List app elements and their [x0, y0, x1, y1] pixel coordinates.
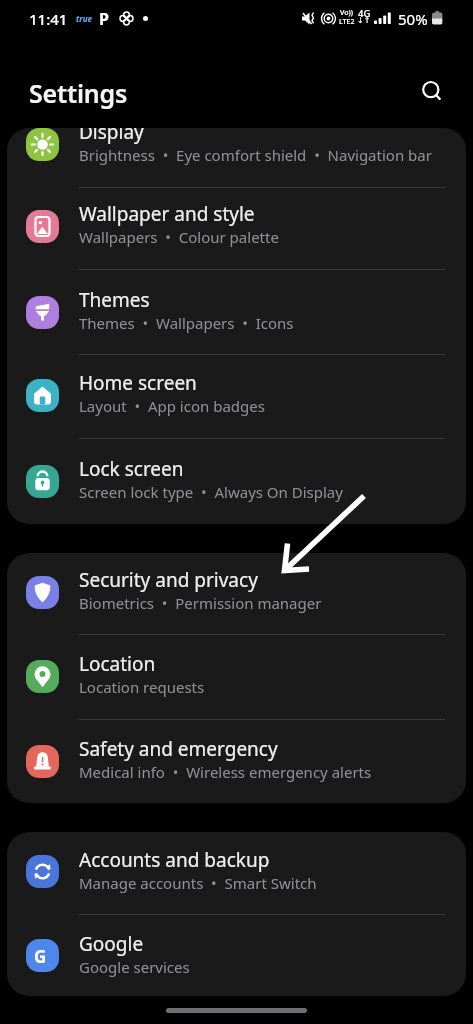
staticText: Home screen — [79, 370, 197, 396]
staticText: P — [99, 8, 109, 30]
staticText: Themes • Wallpapers • Icons — [79, 313, 294, 333]
button[interactable] — [420, 79, 444, 103]
staticText: Google services — [79, 957, 190, 977]
staticText: Google — [79, 931, 144, 957]
staticText: 4G — [358, 7, 371, 20]
staticText: Lock screen — [79, 456, 184, 482]
button[interactable] — [7, 634, 466, 718]
staticText: Wallpaper and style — [79, 201, 255, 227]
button[interactable] — [7, 914, 466, 996]
staticText: Manage accounts • Smart Switch — [79, 873, 317, 893]
staticText: Vo)) — [340, 8, 353, 18]
button[interactable] — [7, 353, 466, 437]
staticText: Wallpapers • Colour palette — [79, 227, 279, 247]
staticText: Screen lock type • Always On Display — [79, 482, 343, 502]
button[interactable] — [7, 270, 466, 354]
button[interactable] — [7, 184, 466, 268]
staticText: true — [76, 13, 92, 24]
button[interactable] — [7, 832, 466, 914]
staticText: Medical info • Wireless emergency alerts — [79, 762, 372, 782]
button[interactable] — [7, 439, 466, 523]
button[interactable] — [7, 553, 466, 634]
staticText: Security and privacy — [79, 567, 258, 593]
staticText: Biometrics • Permission manager — [79, 593, 322, 613]
staticText: Layout • App icon badges — [79, 396, 265, 416]
staticText: Themes — [79, 287, 150, 313]
staticText: Brightness • Eye comfort shield • Naviga… — [79, 145, 432, 165]
staticText: Accounts and backup — [79, 847, 270, 873]
staticText: LTE2 — [339, 17, 355, 27]
button[interactable] — [7, 719, 466, 803]
staticText: 50% — [398, 9, 428, 29]
staticText: Location requests — [79, 677, 205, 697]
staticText: Settings — [29, 76, 128, 110]
staticText: G — [34, 945, 47, 968]
staticText: Display — [79, 128, 144, 145]
staticText: ↓↑ — [357, 16, 371, 25]
staticText: Safety and emergency — [79, 736, 278, 762]
staticText: 11:41 — [29, 9, 68, 29]
staticText: Location — [79, 651, 156, 677]
button[interactable] — [7, 128, 466, 186]
